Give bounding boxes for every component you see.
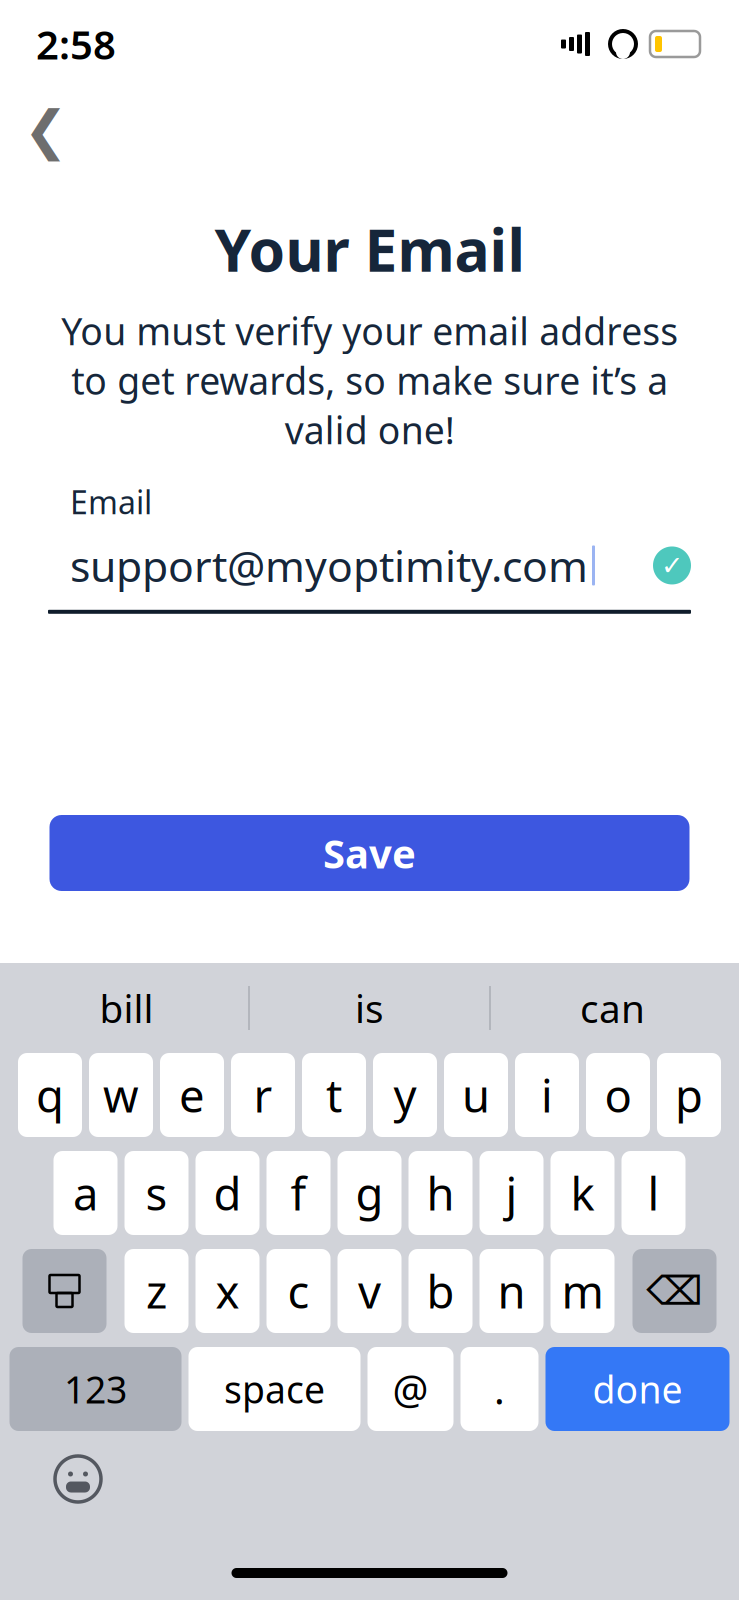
button[interactable]: @ bbox=[367, 1347, 453, 1431]
button[interactable]: 123 bbox=[9, 1347, 181, 1431]
button[interactable]: Emoji keyboard bbox=[46, 1447, 110, 1511]
staticText: Your Email bbox=[214, 210, 524, 288]
button[interactable]: g bbox=[337, 1151, 401, 1235]
button[interactable]: u bbox=[444, 1053, 508, 1137]
staticText: p bbox=[675, 1065, 703, 1125]
button[interactable]: v bbox=[337, 1249, 401, 1333]
button[interactable]: s bbox=[124, 1151, 188, 1235]
staticText: @ bbox=[392, 1362, 428, 1415]
staticText: ✓ bbox=[661, 550, 683, 581]
staticText: l bbox=[647, 1163, 659, 1223]
staticText: ⌫ bbox=[646, 1268, 703, 1314]
button[interactable]: z bbox=[124, 1249, 188, 1333]
staticText: . bbox=[494, 1362, 505, 1415]
staticText: done bbox=[592, 1364, 682, 1414]
button[interactable]: Backspace bbox=[632, 1249, 716, 1333]
button[interactable]: done bbox=[545, 1347, 729, 1431]
button[interactable]: a bbox=[53, 1151, 117, 1235]
button[interactable]: n bbox=[479, 1249, 543, 1333]
button[interactable]: c bbox=[266, 1249, 330, 1333]
button[interactable]: b bbox=[408, 1249, 472, 1333]
staticText: f bbox=[290, 1163, 306, 1223]
button[interactable]: bill bbox=[5, 975, 248, 1041]
staticText: v bbox=[358, 1261, 381, 1321]
button[interactable]: can bbox=[491, 975, 734, 1041]
staticText: q bbox=[36, 1065, 64, 1125]
staticText: y bbox=[393, 1065, 416, 1125]
staticText: bill bbox=[99, 982, 153, 1034]
button[interactable]: k bbox=[550, 1151, 614, 1235]
button[interactable]: . bbox=[460, 1347, 538, 1431]
staticText: h bbox=[426, 1163, 454, 1223]
button[interactable]: e bbox=[160, 1053, 224, 1137]
button[interactable]: f bbox=[266, 1151, 330, 1235]
staticText: j bbox=[505, 1163, 517, 1223]
button[interactable]: x bbox=[195, 1249, 259, 1333]
staticText: Email bbox=[70, 481, 152, 523]
staticText: 123 bbox=[64, 1364, 127, 1414]
staticText: d bbox=[213, 1163, 241, 1223]
staticText: e bbox=[179, 1065, 205, 1125]
staticText: is bbox=[355, 982, 384, 1034]
staticText: i bbox=[541, 1065, 553, 1125]
button[interactable]: is bbox=[250, 975, 489, 1041]
button[interactable]: l bbox=[621, 1151, 685, 1235]
staticText: 2:58 bbox=[36, 17, 116, 70]
staticText: support@myoptimity.com bbox=[70, 537, 588, 594]
staticText: o bbox=[604, 1065, 631, 1125]
staticText: c bbox=[287, 1261, 309, 1321]
staticText: b bbox=[426, 1261, 454, 1321]
staticText: w bbox=[103, 1065, 139, 1125]
staticText: can bbox=[580, 982, 645, 1034]
button[interactable]: Save bbox=[49, 815, 689, 891]
staticText: x bbox=[215, 1261, 239, 1321]
button[interactable]: p bbox=[657, 1053, 721, 1137]
button[interactable]: q bbox=[18, 1053, 82, 1137]
staticText: m bbox=[561, 1261, 603, 1321]
button[interactable]: h bbox=[408, 1151, 472, 1235]
button[interactable]: Back bbox=[14, 98, 78, 162]
button[interactable]: j bbox=[479, 1151, 543, 1235]
button[interactable]: Shift bbox=[22, 1249, 106, 1333]
staticText: ❮ bbox=[23, 100, 68, 160]
button[interactable]: space bbox=[188, 1347, 360, 1431]
staticText: Save bbox=[323, 826, 416, 879]
button[interactable]: t bbox=[302, 1053, 366, 1137]
button[interactable]: y bbox=[373, 1053, 437, 1137]
staticText: a bbox=[73, 1163, 98, 1223]
staticText: k bbox=[570, 1163, 594, 1223]
staticText: g bbox=[355, 1163, 383, 1223]
button[interactable]: m bbox=[550, 1249, 614, 1333]
button[interactable]: r bbox=[231, 1053, 295, 1137]
button[interactable]: o bbox=[586, 1053, 650, 1137]
button[interactable]: w bbox=[89, 1053, 153, 1137]
staticText: s bbox=[145, 1163, 167, 1223]
staticText: r bbox=[253, 1065, 272, 1125]
staticText: You must verify your email address to ge… bbox=[61, 306, 678, 455]
button[interactable]: i bbox=[515, 1053, 579, 1137]
button[interactable]: d bbox=[195, 1151, 259, 1235]
staticText: t bbox=[326, 1065, 342, 1125]
staticText: z bbox=[146, 1261, 167, 1321]
staticText: n bbox=[497, 1261, 525, 1321]
staticText: space bbox=[224, 1364, 325, 1414]
staticText: u bbox=[462, 1065, 490, 1125]
